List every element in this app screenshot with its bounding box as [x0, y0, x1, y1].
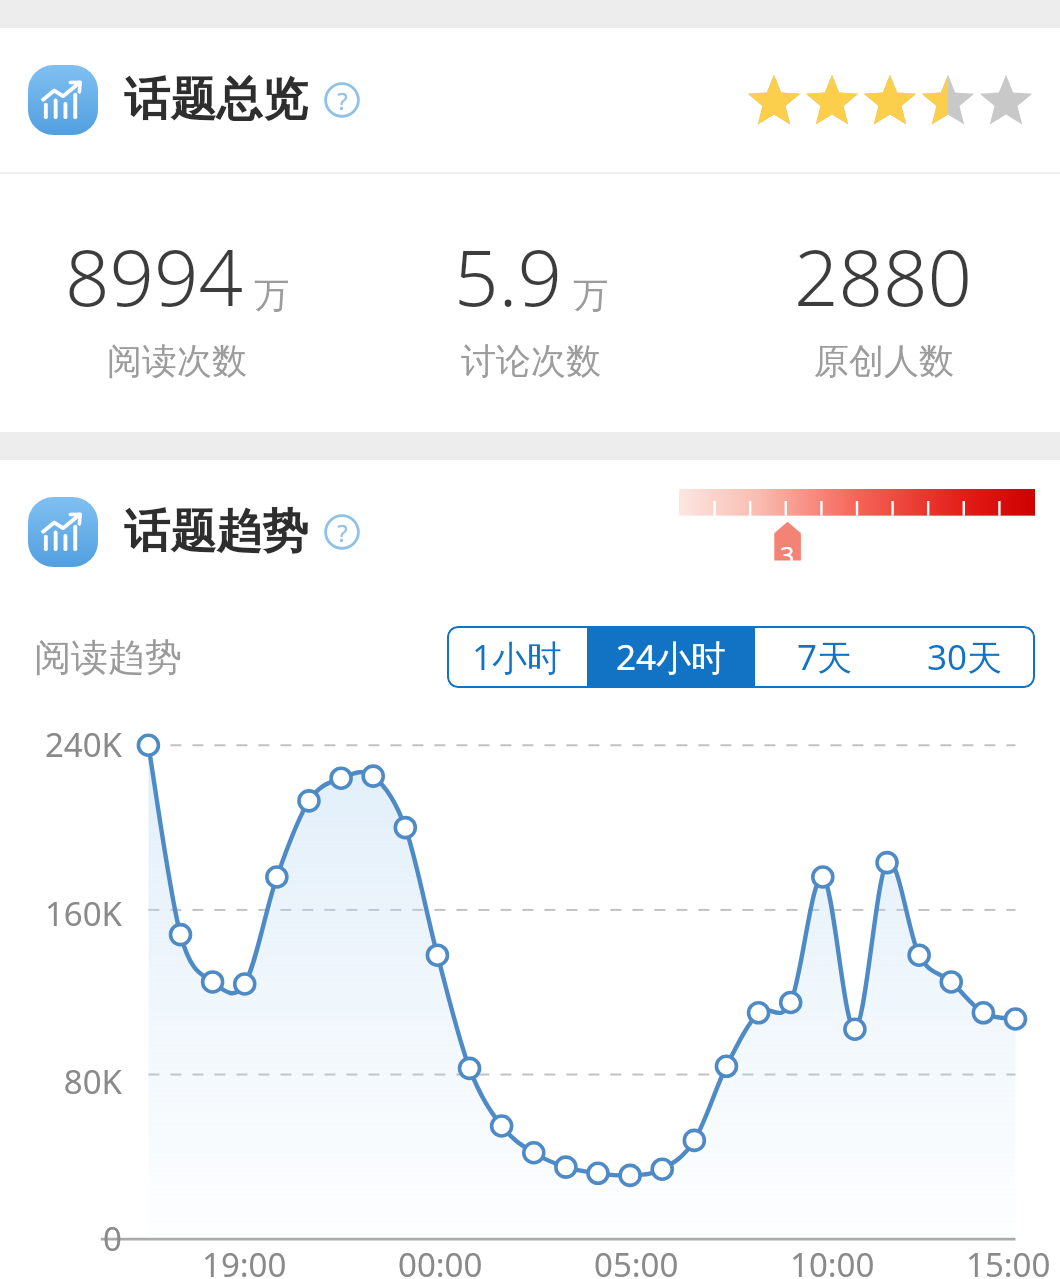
staticText: 1小时: [472, 633, 563, 681]
staticText: 24小时: [616, 633, 727, 681]
staticText: ?: [337, 516, 348, 549]
button[interactable]: 帮助: [324, 82, 360, 118]
staticText: 万: [573, 273, 608, 317]
staticText: 05:00: [594, 1242, 679, 1279]
button[interactable]: 话题总览: [0, 28, 1060, 172]
button[interactable]: 帮助: [324, 514, 360, 550]
staticText: ?: [337, 84, 348, 117]
staticText: 2880: [794, 223, 973, 329]
staticText: 00:00: [398, 1242, 483, 1279]
button[interactable]: 8994: [0, 223, 354, 383]
button[interactable]: 话题趋势: [0, 460, 1060, 604]
staticText: 话题趋势: [124, 503, 308, 561]
staticText: 阅读趋势: [34, 634, 182, 681]
button[interactable]: 2880: [707, 223, 1060, 383]
staticText: 5.9: [454, 223, 563, 329]
button[interactable]: 热度 3: [679, 489, 1035, 575]
staticText: 0: [103, 1216, 122, 1261]
button[interactable]: 5.9: [354, 223, 707, 383]
staticText: 原创人数: [814, 339, 954, 383]
staticText: 160K: [44, 891, 122, 936]
button[interactable]: 评分 3.5 星: [745, 71, 1035, 129]
staticText: 3: [780, 538, 795, 572]
staticText: 10:00: [790, 1242, 875, 1279]
button[interactable]: 24小时: [587, 626, 755, 688]
staticText: 30天: [927, 633, 1003, 681]
button[interactable]: 30天: [895, 626, 1035, 688]
staticText: 19:00: [202, 1242, 287, 1279]
staticText: 阅读次数: [107, 339, 247, 383]
staticText: 240K: [44, 722, 122, 767]
staticText: 7天: [797, 633, 853, 681]
staticText: 万: [254, 273, 289, 317]
staticText: 15:00: [966, 1242, 1051, 1279]
staticText: 话题总览: [124, 71, 308, 129]
staticText: 8994: [65, 223, 244, 329]
button[interactable]: 7天: [755, 626, 895, 688]
staticText: 讨论次数: [461, 339, 601, 383]
staticText: 80K: [63, 1059, 122, 1104]
button[interactable]: 1小时: [447, 626, 587, 688]
